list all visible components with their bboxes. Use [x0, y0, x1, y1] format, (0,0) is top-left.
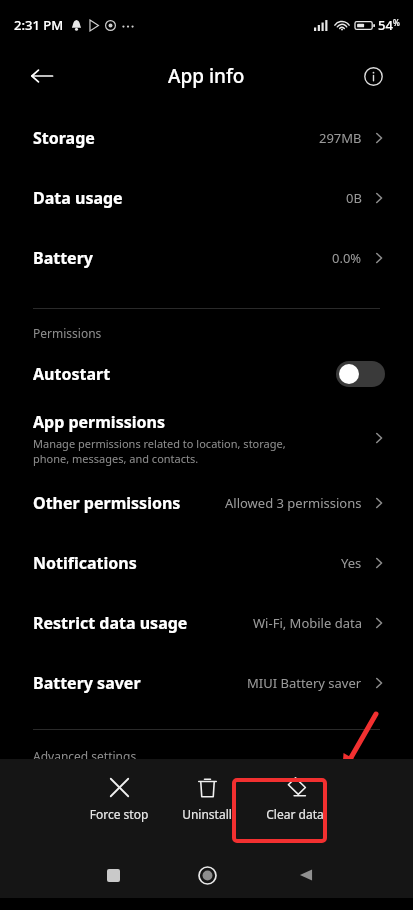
button[interactable]: Back	[22, 56, 62, 96]
button[interactable]: Battery	[0, 228, 413, 288]
staticText: 2:31 PM	[14, 16, 64, 34]
staticText: Yes	[341, 554, 362, 572]
staticText: Autostart	[33, 363, 336, 385]
button[interactable]: Force stop	[75, 770, 163, 828]
staticText: Data usage	[33, 187, 123, 209]
staticText: Battery saver	[33, 672, 141, 694]
staticText: Allowed 3 permissions	[225, 494, 362, 512]
button[interactable]: Restrict data usage	[0, 593, 413, 653]
staticText: 54	[378, 16, 393, 34]
button[interactable]: Other permissions	[0, 473, 413, 533]
staticText: App info	[168, 63, 245, 89]
staticText: %	[393, 17, 400, 28]
staticText: App permissions	[33, 411, 165, 433]
staticText: 0B	[346, 189, 362, 207]
staticText: Storage	[33, 127, 95, 149]
staticText: Advanced settings	[33, 748, 137, 764]
staticText: Uninstall	[163, 806, 251, 822]
staticText: 297MB	[319, 129, 362, 147]
button[interactable]: Data usage	[0, 168, 413, 228]
button[interactable]: App details	[353, 56, 393, 96]
staticText: MIUI Battery saver	[247, 674, 362, 692]
button[interactable]: Notifications	[0, 533, 413, 593]
staticText: Force stop	[75, 806, 163, 822]
button[interactable]: Clear data	[251, 770, 339, 828]
staticText: Notifications	[33, 552, 137, 574]
button[interactable]: Battery saver	[0, 653, 413, 713]
staticText: Other permissions	[33, 492, 181, 514]
staticText: Restrict data usage	[33, 612, 188, 634]
button[interactable]: Uninstall	[163, 770, 251, 828]
button[interactable]: Autostart	[0, 351, 413, 397]
staticText: 0.0%	[332, 249, 362, 267]
staticText: Battery	[33, 247, 93, 269]
staticText: Manage permissions related to location, …	[33, 436, 286, 466]
button[interactable]: Back	[289, 858, 323, 892]
staticText: Wi-Fi, Mobile data	[253, 614, 362, 632]
button[interactable]: App permissions	[0, 403, 413, 473]
button[interactable]: Storage	[0, 108, 413, 168]
button[interactable]: Recents	[96, 858, 130, 892]
staticText: Permissions	[33, 325, 102, 341]
staticText: Clear data	[251, 806, 339, 822]
button[interactable]: Home	[190, 858, 224, 892]
